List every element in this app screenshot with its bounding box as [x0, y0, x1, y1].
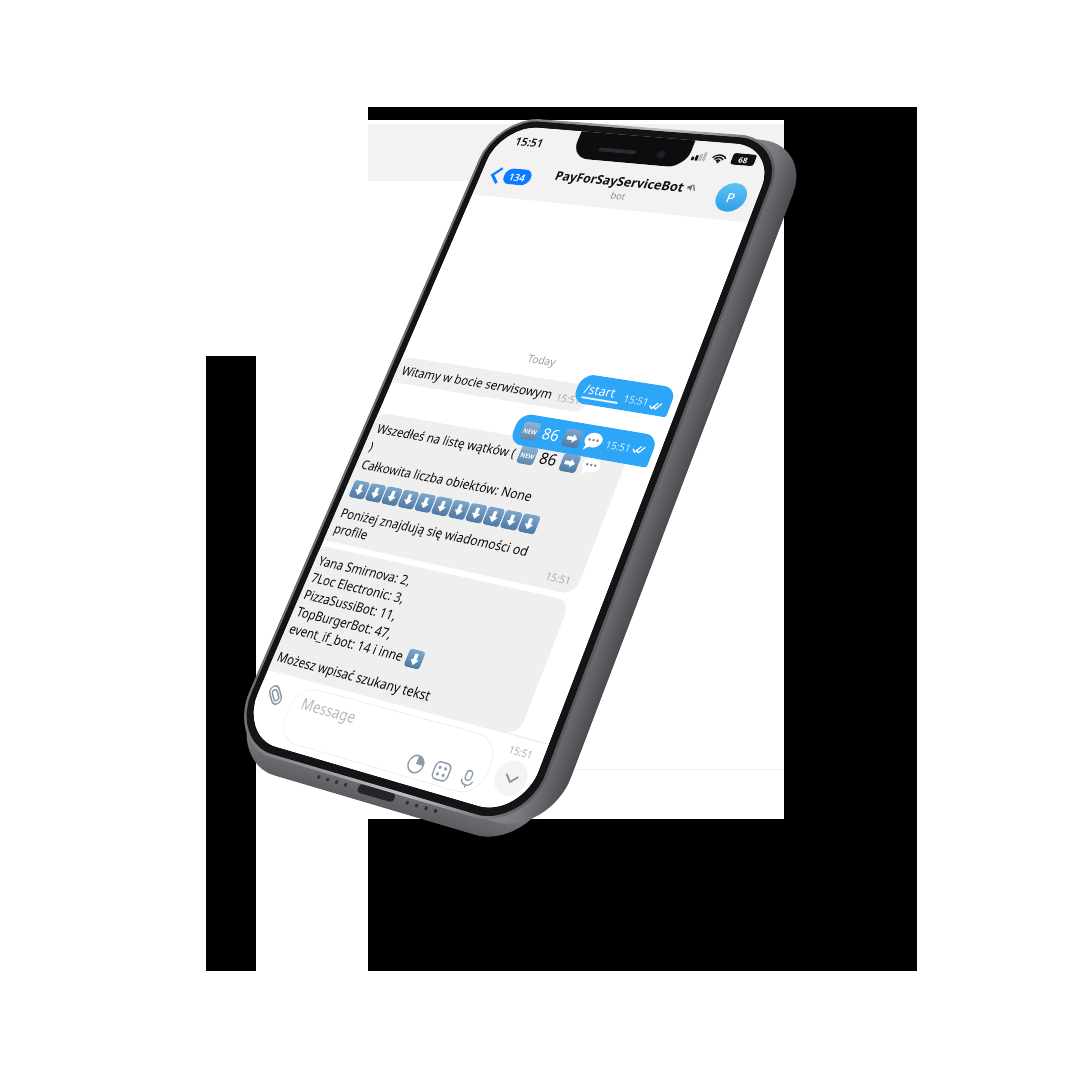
staticText: 86 [539, 423, 564, 446]
staticText: PizzaSussiBot: 11, [301, 585, 400, 624]
button[interactable]: Attach [262, 682, 289, 708]
staticText: P [724, 189, 739, 206]
staticText: 134 [507, 170, 528, 184]
staticText: bot [609, 189, 628, 202]
staticText: Yana Smirnova: 2, [316, 551, 415, 589]
staticText: 15:51 [507, 742, 535, 762]
staticText: Całkowita liczba obiektów: None [359, 455, 536, 505]
button[interactable]: PayForSayServiceBot [544, 167, 702, 209]
staticText: 15:51 [603, 437, 634, 455]
staticText: Wszedłeś na listę wątków ( [374, 420, 523, 462]
button[interactable]: Back, 134 unread [485, 162, 538, 191]
staticText: Today [411, 334, 683, 388]
staticText: 86 [536, 447, 561, 471]
button[interactable]: Keyboard [430, 760, 453, 783]
staticText: 7Loc Electronic: 3, [308, 568, 408, 607]
staticText: /start [582, 380, 619, 401]
button[interactable]: Witamy w bocie serwisowym [392, 356, 595, 414]
button[interactable]: NEW [508, 413, 659, 468]
staticText: ) [366, 438, 377, 454]
button[interactable]: /start [571, 373, 677, 417]
staticText: Poniżej znajdują się wiadomości od profi… [331, 504, 532, 577]
button[interactable]: Voice message [456, 767, 480, 791]
button[interactable]: Yana Smirnova: 2, [268, 545, 571, 736]
staticText: 15:51 [543, 568, 574, 588]
staticText: PayForSayServiceBot [553, 167, 688, 195]
staticText: Witamy w bocie serwisowym [399, 362, 556, 402]
staticText: Message [298, 693, 360, 728]
staticText: NEW [522, 426, 538, 437]
staticText: event_if_bot: 14 i inne [286, 619, 410, 666]
button[interactable]: Profile [711, 182, 752, 213]
staticText: 68 [737, 154, 750, 165]
staticText: NEW [519, 451, 536, 461]
staticText: 15:51 [621, 391, 652, 409]
button[interactable]: Wszedłeś na listę wątków ( [324, 412, 629, 595]
button[interactable]: Scroll to bottom [489, 757, 533, 800]
staticText: 15:51 [554, 390, 584, 407]
staticText: TopBurgerBot: 47, [294, 602, 396, 643]
staticText: Możesz wpisać szukany tekst [274, 647, 434, 705]
button[interactable]: Schedule [404, 752, 428, 776]
button[interactable]: Message [275, 684, 501, 798]
staticText: 15:51 [513, 133, 546, 150]
